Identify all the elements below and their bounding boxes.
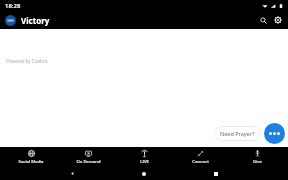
button[interactable]: Connect — [175, 147, 225, 167]
button[interactable]: LIVE — [119, 147, 169, 167]
button[interactable]: Need Prayer? — [214, 126, 261, 141]
staticText: On Demand — [76, 159, 101, 165]
staticText: LIVE — [140, 159, 149, 165]
button[interactable]: Home — [108, 167, 180, 180]
button[interactable]: Recent apps — [180, 167, 252, 180]
button[interactable]: Search — [256, 13, 270, 27]
button[interactable]: Give — [232, 147, 282, 167]
staticText: Need Prayer? — [220, 130, 255, 137]
button[interactable]: Social Media — [6, 147, 56, 167]
button[interactable]: Chat options — [264, 123, 285, 144]
button[interactable]: Victory — [5, 15, 50, 26]
button[interactable]: On Demand — [63, 147, 113, 167]
button[interactable]: Back — [36, 167, 108, 180]
button[interactable]: Settings — [271, 13, 285, 27]
staticText: Powered by Cuebric — [6, 58, 48, 64]
staticText: Social Media — [18, 159, 44, 165]
staticText: 18:28 — [5, 2, 21, 10]
staticText: Give — [253, 159, 262, 165]
staticText: Connect — [192, 159, 209, 165]
staticText: Victory — [21, 15, 50, 26]
